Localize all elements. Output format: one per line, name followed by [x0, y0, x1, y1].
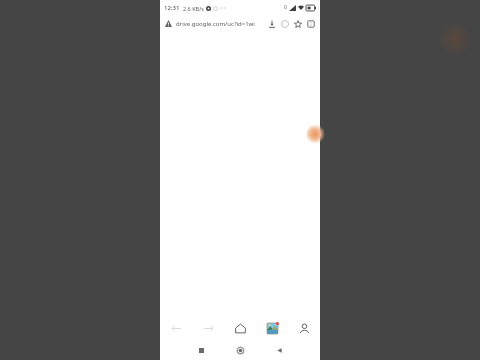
button[interactable]: Site information — [163, 18, 174, 29]
button[interactable]: Download — [266, 18, 278, 30]
staticText: drive.google.com/uc?id=1wi — [176, 20, 255, 28]
button[interactable]: Forward — [192, 316, 224, 340]
button[interactable]: Bookmark — [292, 18, 304, 30]
button[interactable]: Home — [221, 340, 260, 360]
button[interactable]: drive.google.com/uc?id=1wi — [176, 15, 264, 32]
button[interactable]: Back — [160, 316, 192, 340]
button[interactable]: Switch tabs — [256, 316, 288, 340]
button[interactable]: Home — [224, 316, 256, 340]
button[interactable]: Profile — [288, 316, 320, 340]
button[interactable]: Stop loading — [279, 18, 291, 30]
staticText: 2.6 KB/s — [183, 5, 204, 12]
staticText: 0 — [284, 4, 287, 11]
button[interactable]: Customise and control — [305, 18, 317, 30]
staticText: 12:31 — [164, 4, 180, 12]
button[interactable]: Recents — [182, 340, 221, 360]
button[interactable]: Back — [260, 340, 299, 360]
